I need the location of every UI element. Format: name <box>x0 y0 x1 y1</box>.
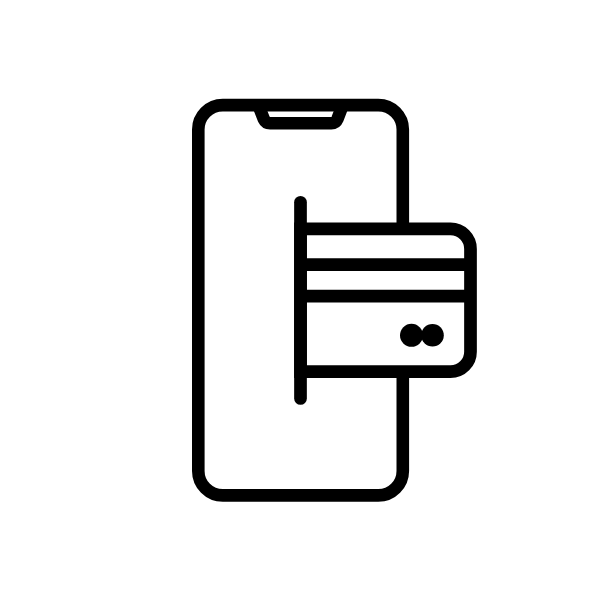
button[interactable]: Mobile payment with credit card <box>0 0 600 600</box>
